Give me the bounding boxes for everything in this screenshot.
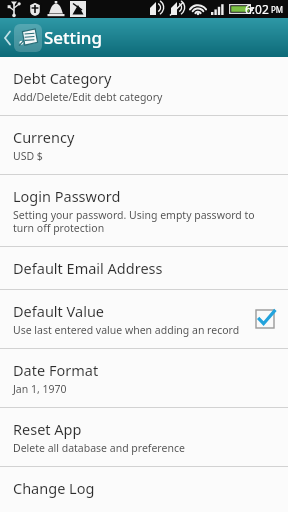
staticText: Currency xyxy=(13,127,75,147)
staticText: Setting your password. Using empty passw… xyxy=(13,208,278,235)
button[interactable]: Default Value xyxy=(0,290,288,348)
staticText: Add/Delete/Edit debt category xyxy=(13,90,163,104)
staticText: Login Password xyxy=(13,186,121,206)
staticText: Setting xyxy=(44,26,102,49)
button[interactable]: Date Format xyxy=(0,349,288,407)
staticText: Default Value xyxy=(13,301,105,321)
button[interactable]: Change Log xyxy=(0,467,288,512)
staticText: Reset App xyxy=(13,419,82,439)
button[interactable]: Default Email Address xyxy=(0,247,288,289)
button[interactable]: Default Value checkbox xyxy=(252,306,278,332)
staticText: Jan 1, 1970 xyxy=(13,382,67,396)
staticText: PM xyxy=(271,4,284,15)
staticText: Change Log xyxy=(13,478,95,498)
staticText: 6:02 xyxy=(245,1,269,17)
button[interactable]: Back xyxy=(0,18,48,57)
staticText: Default Email Address xyxy=(13,258,163,278)
staticText: Date Format xyxy=(13,360,99,380)
button[interactable]: Login Password xyxy=(0,175,288,246)
button[interactable]: Debt Category xyxy=(0,57,288,115)
staticText: USD $ xyxy=(13,149,43,163)
staticText: Use last entered value when adding an re… xyxy=(13,323,240,337)
staticText: Delete all database and preference xyxy=(13,441,185,455)
staticText: Debt Category xyxy=(13,68,112,88)
button[interactable]: Reset App xyxy=(0,408,288,466)
button[interactable]: Currency xyxy=(0,116,288,174)
